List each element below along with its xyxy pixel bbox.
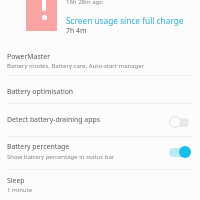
staticText: Screen usage since full charge — [66, 15, 184, 26]
staticText: PowerMaster — [7, 52, 50, 61]
staticText: Show battery percentage in status bar — [7, 153, 115, 161]
staticText: 7h 4m — [66, 26, 87, 35]
staticText: Battery percentage — [7, 142, 70, 151]
button[interactable]: Battery optimisation — [0, 80, 200, 106]
button[interactable]: Sleep — [0, 172, 200, 200]
staticText: Detect battery-draining apps — [7, 115, 100, 124]
staticText: 1 minute — [7, 186, 33, 194]
button[interactable]: Battery percentage — [0, 136, 200, 167]
button[interactable]: PowerMaster — [0, 44, 200, 75]
staticText: Battery optimisation — [7, 87, 74, 96]
staticText: Sleep — [7, 176, 25, 185]
staticText: Battery modes, Battery care, Auto-start … — [7, 62, 145, 70]
button[interactable]: Switch off — [169, 116, 191, 128]
button[interactable]: Detect battery-draining apps — [0, 108, 200, 134]
staticText: 16h 28m ago — [66, 0, 103, 6]
button[interactable]: Switch on — [169, 146, 191, 158]
